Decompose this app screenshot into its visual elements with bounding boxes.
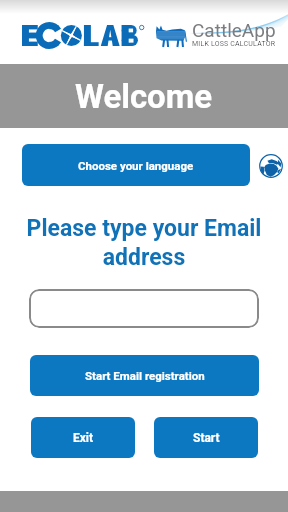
staticText: Start Email registration — [85, 369, 205, 382]
button[interactable]: Start — [154, 417, 258, 458]
button[interactable]: Exit — [31, 417, 135, 458]
staticText: Please type your Email address — [14, 215, 274, 271]
button[interactable]: Choose your language — [22, 144, 250, 186]
staticText: CattleApp — [192, 19, 276, 41]
button[interactable] — [29, 289, 259, 328]
staticText: Welcome — [75, 77, 213, 116]
button[interactable]: Select language — [257, 152, 284, 179]
button[interactable]: Start Email registration — [30, 355, 259, 396]
staticText: MILK LOSS CALCULATOR — [192, 40, 276, 46]
staticText: Exit — [73, 431, 94, 445]
staticText: Start — [193, 431, 220, 445]
staticText: Choose your language — [78, 159, 194, 172]
